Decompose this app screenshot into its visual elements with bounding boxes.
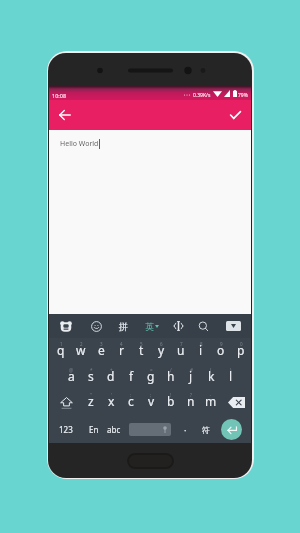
button[interactable]: 0 bbox=[231, 339, 251, 364]
button[interactable]: Emoji bbox=[89, 319, 103, 333]
button[interactable]: 5 bbox=[131, 339, 151, 364]
button[interactable]: Home bbox=[127, 453, 174, 469]
staticText: 1 bbox=[60, 341, 63, 347]
staticText: Hello World bbox=[60, 139, 99, 149]
staticText: " bbox=[90, 392, 92, 398]
button[interactable]: 8 bbox=[191, 339, 211, 364]
button[interactable]: Input method bbox=[59, 319, 73, 333]
staticText: ( bbox=[210, 367, 212, 373]
button[interactable]: ; bbox=[141, 390, 161, 415]
staticText: v bbox=[148, 393, 155, 409]
staticText: r bbox=[119, 342, 124, 358]
staticText: 2 bbox=[80, 341, 83, 347]
staticText: t bbox=[139, 342, 144, 358]
button[interactable]: / bbox=[161, 365, 181, 390]
button[interactable]: 6 bbox=[151, 339, 171, 364]
staticText: * bbox=[90, 367, 93, 373]
staticText: 123 bbox=[59, 424, 73, 435]
button[interactable]: · bbox=[178, 417, 192, 442]
staticText: n bbox=[187, 393, 195, 409]
staticText: z bbox=[88, 393, 94, 409]
staticText: a bbox=[68, 368, 75, 384]
staticText: i bbox=[199, 342, 203, 358]
button[interactable]: Enter bbox=[221, 419, 242, 440]
button[interactable]: " bbox=[81, 390, 101, 415]
staticText: j bbox=[189, 368, 193, 384]
staticText: p bbox=[237, 342, 245, 358]
button[interactable]: 3 bbox=[91, 339, 111, 364]
button[interactable]: 9 bbox=[211, 339, 231, 364]
staticText: · bbox=[184, 424, 187, 436]
button[interactable]: Move cursor bbox=[171, 319, 185, 333]
staticText: 0.39K/s bbox=[193, 92, 211, 99]
staticText: 拼 bbox=[119, 321, 128, 332]
staticText: w bbox=[76, 342, 86, 358]
staticText: 符 bbox=[202, 425, 210, 435]
button[interactable]: 123 bbox=[55, 417, 77, 442]
button[interactable]: 符 bbox=[198, 417, 214, 442]
staticText: ? bbox=[190, 392, 192, 398]
staticText: ‘ bbox=[111, 392, 112, 398]
staticText: 7 bbox=[180, 341, 183, 347]
button[interactable]: * bbox=[81, 365, 101, 390]
button[interactable]: ( bbox=[201, 365, 221, 390]
button[interactable]: ‘ bbox=[101, 390, 121, 415]
button[interactable]: Back bbox=[55, 105, 75, 125]
staticText: - bbox=[130, 367, 132, 373]
staticText: 英 bbox=[145, 321, 154, 332]
button[interactable]: = bbox=[141, 365, 161, 390]
staticText: 10:08 bbox=[52, 92, 67, 99]
staticText: # bbox=[190, 367, 193, 373]
staticText: g bbox=[147, 368, 155, 384]
staticText: l bbox=[229, 368, 233, 384]
button[interactable]: · bbox=[201, 390, 221, 415]
staticText: d bbox=[107, 368, 115, 384]
staticText: k bbox=[208, 368, 215, 384]
staticText: = bbox=[150, 367, 153, 373]
staticText: e bbox=[98, 342, 105, 358]
button[interactable]: Done bbox=[225, 105, 245, 125]
button[interactable]: + bbox=[101, 365, 121, 390]
staticText: h bbox=[167, 368, 175, 384]
staticText: 3 bbox=[100, 341, 103, 347]
staticText: 9 bbox=[220, 341, 223, 347]
button[interactable]: : bbox=[121, 390, 141, 415]
staticText: y bbox=[158, 342, 165, 358]
button[interactable]: ! bbox=[161, 390, 181, 415]
button[interactable]: 拼 bbox=[115, 318, 131, 334]
button[interactable]: Space bbox=[129, 423, 171, 436]
staticText: f bbox=[129, 368, 134, 384]
button[interactable]: Shift bbox=[55, 390, 77, 415]
button[interactable]: 1 bbox=[51, 339, 71, 364]
button[interactable]: ) bbox=[221, 365, 241, 390]
staticText: ; bbox=[150, 392, 152, 398]
button[interactable]: Backspace bbox=[224, 390, 248, 415]
button[interactable]: abc bbox=[104, 417, 124, 442]
button[interactable]: 英 bbox=[145, 318, 159, 334]
button[interactable]: 2 bbox=[71, 339, 91, 364]
staticText: 5 bbox=[140, 341, 143, 347]
staticText: : bbox=[130, 392, 132, 398]
staticText: b bbox=[167, 393, 175, 409]
button[interactable]: Hide keyboard bbox=[226, 321, 241, 331]
button[interactable]: En bbox=[84, 417, 104, 442]
staticText: abc bbox=[107, 424, 121, 435]
staticText: 8 bbox=[200, 341, 203, 347]
staticText: 6 bbox=[160, 341, 163, 347]
staticText: · bbox=[210, 392, 212, 398]
button[interactable]: 4 bbox=[111, 339, 131, 364]
staticText: x bbox=[108, 393, 115, 409]
staticText: c bbox=[128, 393, 134, 409]
button[interactable]: Search bbox=[196, 319, 210, 333]
staticText: ) bbox=[230, 367, 232, 373]
button[interactable]: # bbox=[181, 365, 201, 390]
button[interactable]: - bbox=[121, 365, 141, 390]
staticText: q bbox=[57, 342, 65, 358]
button[interactable]: 7 bbox=[171, 339, 191, 364]
button[interactable]: @ bbox=[61, 365, 81, 390]
staticText: s bbox=[88, 368, 94, 384]
button[interactable]: ? bbox=[181, 390, 201, 415]
staticText: 0 bbox=[240, 341, 243, 347]
staticText: / bbox=[170, 367, 172, 373]
staticText: + bbox=[110, 367, 113, 373]
